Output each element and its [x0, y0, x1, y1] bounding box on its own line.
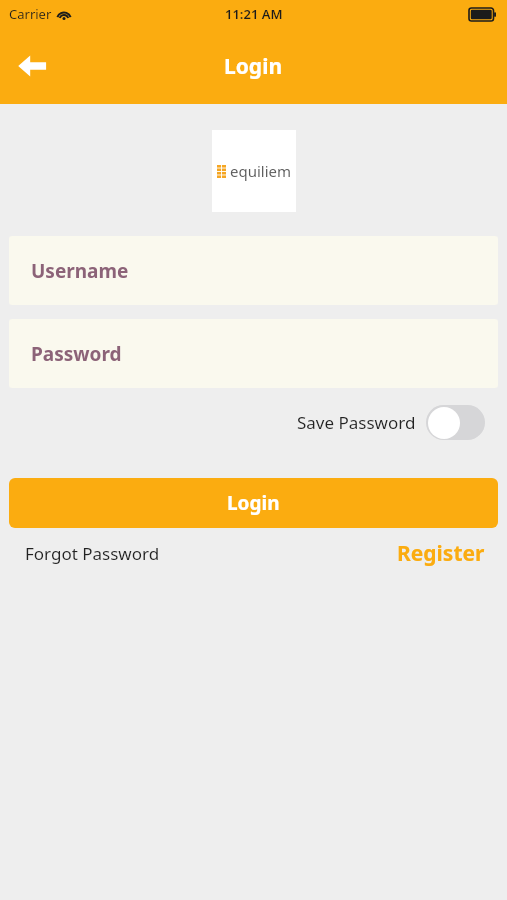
staticText: 11:21 AM	[225, 5, 283, 23]
staticText: Username	[31, 258, 129, 284]
staticText: Login	[224, 52, 283, 81]
button[interactable]: Save Password	[297, 405, 485, 440]
button[interactable]: Password	[9, 319, 498, 388]
button[interactable]: Login	[9, 478, 498, 528]
staticText: Carrier	[9, 5, 52, 23]
staticText: Forgot Password	[25, 542, 160, 565]
staticText: Login	[227, 490, 280, 516]
button[interactable]: Username	[9, 236, 498, 305]
staticText: Register	[397, 539, 485, 568]
staticText: Save Password	[297, 411, 416, 434]
staticText: equiliem	[230, 161, 292, 181]
staticText: Password	[31, 341, 122, 367]
button[interactable]: Register	[397, 539, 485, 568]
button[interactable]: Back	[8, 42, 56, 90]
button[interactable]: Forgot Password	[25, 542, 160, 565]
